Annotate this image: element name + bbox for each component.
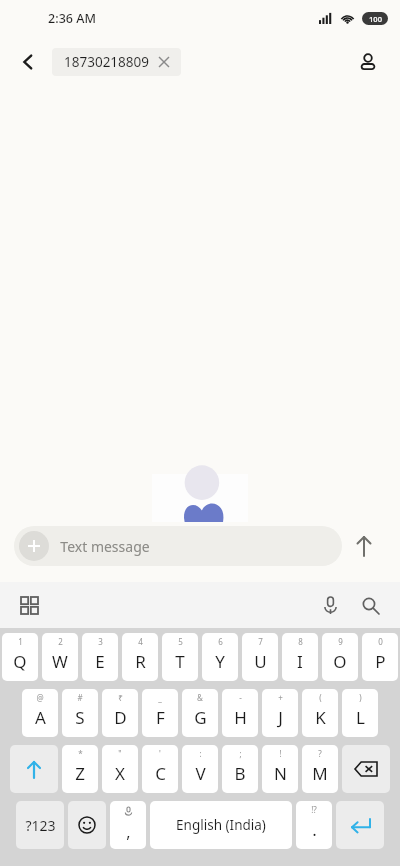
button[interactable]: 9 [322, 633, 358, 681]
staticText: K [315, 706, 326, 729]
staticText: + [278, 692, 283, 703]
button[interactable]: ?123 [16, 801, 64, 849]
staticText: Text message [60, 537, 150, 556]
button[interactable]: ) [342, 689, 378, 737]
staticText: 2 [58, 636, 63, 647]
staticText: & [197, 692, 203, 703]
button[interactable]: 4 [122, 633, 158, 681]
staticText: ' [159, 748, 161, 759]
button[interactable]: Keyboard options [14, 590, 44, 620]
button[interactable]: 3 [82, 633, 118, 681]
button[interactable]: Search [350, 585, 390, 625]
button[interactable]: + [262, 689, 298, 737]
staticText: - [239, 692, 242, 703]
button[interactable]: 8 [282, 633, 318, 681]
button[interactable]: Shift [10, 745, 58, 793]
staticText: ! [279, 748, 282, 759]
button[interactable]: ( [302, 689, 338, 737]
staticText: S [75, 706, 85, 729]
button[interactable]: Send [342, 524, 386, 568]
button[interactable]: : [182, 745, 218, 793]
staticText: 3 [98, 636, 103, 647]
staticText: Q [13, 650, 27, 673]
staticText: P [375, 650, 386, 673]
staticText: ? [318, 748, 322, 759]
button[interactable]: ! [262, 745, 298, 793]
staticText: U [254, 650, 267, 673]
button[interactable]: @ [22, 689, 58, 737]
button[interactable]: , [110, 801, 146, 849]
staticText: C [155, 762, 166, 785]
button[interactable]: * [62, 745, 98, 793]
staticText: ?123 [25, 816, 56, 835]
staticText: 7 [258, 636, 263, 647]
staticText: M [312, 762, 328, 785]
staticText: 18730218809 [64, 53, 149, 71]
button[interactable]: - [222, 689, 258, 737]
staticText: ( [319, 692, 322, 703]
button[interactable]: !? [296, 801, 332, 849]
button[interactable]: 2 [42, 633, 78, 681]
button[interactable]: English (India) [150, 801, 292, 849]
staticText: 1 [18, 636, 23, 647]
button[interactable]: 18730218809 [52, 48, 181, 76]
button[interactable]: Add [19, 531, 49, 561]
button[interactable]: 7 [242, 633, 278, 681]
staticText: 9 [338, 636, 343, 647]
staticText: J [278, 706, 283, 729]
staticText: F [156, 706, 165, 729]
staticText: 0 [378, 636, 383, 647]
staticText: . [312, 818, 317, 841]
staticText: " [118, 748, 122, 759]
button[interactable]: " [102, 745, 138, 793]
staticText: !? [311, 804, 317, 815]
button[interactable]: 1 [2, 633, 38, 681]
staticText: X [115, 762, 125, 785]
staticText: # [77, 692, 83, 703]
staticText: * [78, 748, 83, 759]
staticText: D [114, 706, 127, 729]
staticText: T [175, 650, 185, 673]
button[interactable]: ₹ [102, 689, 138, 737]
staticText: A [35, 706, 46, 729]
staticText: L [356, 706, 365, 729]
staticText: 100 [369, 14, 382, 24]
button[interactable]: ' [142, 745, 178, 793]
staticText: 2:36 AM [48, 10, 96, 27]
staticText: ₹ [118, 692, 123, 703]
staticText: Y [215, 650, 225, 673]
staticText: V [195, 762, 206, 785]
staticText: G [194, 706, 207, 729]
staticText: 5 [178, 636, 183, 647]
staticText: H [234, 706, 247, 729]
button[interactable]: Back [8, 42, 48, 82]
button[interactable]: Contact [348, 42, 388, 82]
staticText: ) [359, 692, 362, 703]
staticText: R [135, 650, 146, 673]
staticText: Z [75, 762, 85, 785]
staticText: English (India) [176, 816, 266, 834]
staticText: 4 [138, 636, 143, 647]
button[interactable]: Add [14, 526, 342, 566]
button[interactable]: 5 [162, 633, 198, 681]
staticText: : [199, 748, 202, 759]
staticText: N [274, 762, 287, 785]
button[interactable]: Backspace [342, 745, 390, 793]
button[interactable]: _ [142, 689, 178, 737]
button[interactable]: & [182, 689, 218, 737]
staticText: B [234, 762, 246, 785]
button[interactable]: 6 [202, 633, 238, 681]
button[interactable]: 0 [362, 633, 398, 681]
button[interactable]: ? [302, 745, 338, 793]
staticText: ; [239, 748, 242, 759]
staticText: W [52, 650, 68, 673]
button[interactable]: Enter [336, 801, 384, 849]
staticText: _ [158, 692, 162, 703]
staticText: O [333, 650, 347, 673]
staticText: @ [36, 692, 44, 703]
button[interactable]: Emoji [68, 801, 106, 849]
button[interactable]: Voice input [310, 585, 350, 625]
button[interactable]: # [62, 689, 98, 737]
staticText: 6 [218, 636, 223, 647]
button[interactable]: ; [222, 745, 258, 793]
